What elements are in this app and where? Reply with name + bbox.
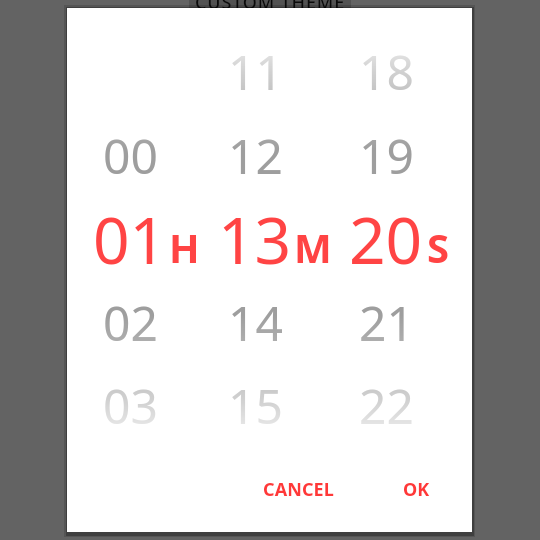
- button[interactable]: CANCEL: [253, 467, 344, 512]
- staticText: M: [294, 220, 332, 274]
- staticText: 15: [228, 373, 283, 438]
- staticText: 11: [228, 39, 283, 104]
- staticText: 18: [359, 39, 414, 104]
- button[interactable]: 15: [193, 363, 317, 447]
- staticText: 21: [359, 290, 414, 355]
- button[interactable]: 12: [193, 113, 317, 197]
- button[interactable]: CUSTOM THEME: [189, 0, 351, 15]
- button[interactable]: 22: [324, 363, 448, 447]
- button[interactable]: OK: [393, 467, 440, 512]
- staticText: 00: [103, 123, 158, 188]
- button[interactable]: 02: [68, 280, 192, 364]
- button[interactable]: 03: [68, 363, 192, 447]
- button[interactable]: 00: [68, 113, 192, 197]
- button[interactable]: 19: [324, 113, 448, 197]
- staticText: 20: [349, 196, 423, 280]
- staticText: 01: [93, 196, 167, 280]
- staticText: 13: [218, 196, 292, 280]
- staticText: CUSTOM THEME: [195, 0, 346, 15]
- staticText: OK: [403, 477, 430, 502]
- button[interactable]: 13: [193, 196, 317, 280]
- staticText: CANCEL: [263, 477, 334, 502]
- button[interactable]: 18: [324, 29, 448, 113]
- button[interactable]: 14: [193, 280, 317, 364]
- button[interactable]: 01: [68, 196, 192, 280]
- staticText: 02: [103, 290, 158, 355]
- button[interactable]: 11: [193, 29, 317, 113]
- staticText: 03: [103, 373, 158, 438]
- button[interactable]: 20: [324, 196, 448, 280]
- staticText: 14: [228, 290, 283, 355]
- button[interactable]: 21: [324, 280, 448, 364]
- staticText: 12: [228, 123, 283, 188]
- staticText: 19: [359, 123, 414, 188]
- staticText: H: [169, 220, 200, 274]
- staticText: 22: [359, 373, 414, 438]
- staticText: S: [427, 220, 450, 274]
